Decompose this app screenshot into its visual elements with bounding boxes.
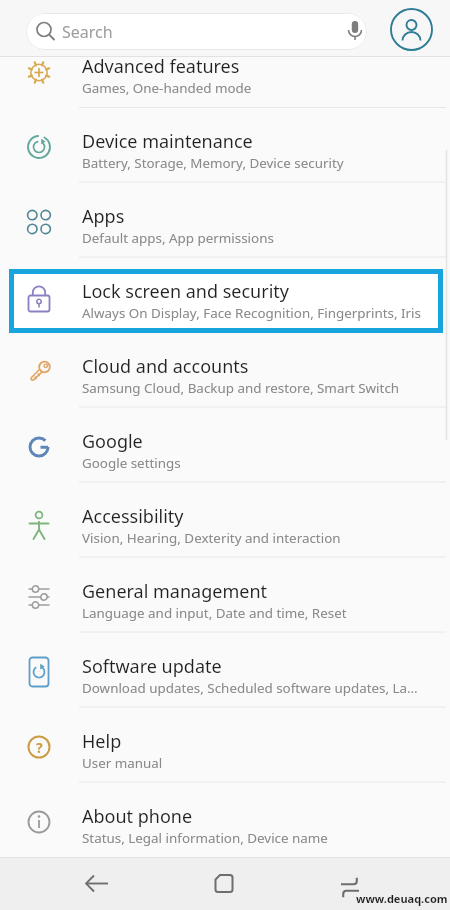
- button[interactable]: Search: [26, 13, 367, 50]
- staticText: Battery, Storage, Memory, Device securit…: [82, 154, 344, 172]
- button[interactable]: [320, 857, 380, 910]
- button[interactable]: Lock screen and security: [0, 258, 450, 333]
- button[interactable]: General management: [0, 558, 450, 633]
- button[interactable]: [194, 857, 254, 910]
- staticText: Software update: [82, 654, 222, 679]
- staticText: Cloud and accounts: [82, 354, 249, 379]
- staticText: Search: [62, 21, 113, 43]
- staticText: Download updates, Scheduled software upd…: [82, 679, 418, 697]
- staticText: Advanced features: [82, 54, 240, 79]
- button[interactable]: Device maintenance: [0, 108, 450, 183]
- staticText: Samsung Cloud, Backup and restore, Smart…: [82, 379, 400, 397]
- staticText: Always On Display, Face Recognition, Fin…: [82, 304, 421, 322]
- staticText: Device maintenance: [82, 129, 253, 154]
- button[interactable]: [389, 7, 434, 52]
- staticText: Games, One-handed mode: [82, 79, 252, 97]
- staticText: Google: [82, 429, 143, 454]
- staticText: Help: [82, 729, 122, 754]
- staticText: Lock screen and security: [82, 279, 289, 304]
- staticText: About phone: [82, 804, 193, 829]
- staticText: ?: [36, 738, 43, 757]
- staticText: www.deuaq.com: [356, 891, 448, 906]
- button[interactable]: Software update: [0, 633, 450, 708]
- button[interactable]: Accessibility: [0, 483, 450, 558]
- button[interactable]: Cloud and accounts: [0, 333, 450, 408]
- button[interactable]: About phone: [0, 783, 450, 858]
- staticText: General management: [82, 579, 268, 604]
- staticText: Language and input, Date and time, Reset: [82, 604, 347, 622]
- staticText: Accessibility: [82, 504, 184, 529]
- staticText: Vision, Hearing, Dexterity and interacti…: [82, 529, 341, 547]
- staticText: Apps: [82, 204, 125, 229]
- button[interactable]: Google: [0, 408, 450, 483]
- staticText: Default apps, App permissions: [82, 229, 274, 247]
- button[interactable]: Apps: [0, 183, 450, 258]
- button[interactable]: [67, 857, 127, 910]
- button[interactable]: Advanced features: [0, 57, 450, 108]
- button[interactable]: Help: [0, 708, 450, 783]
- staticText: Status, Legal information, Device name: [82, 829, 328, 847]
- staticText: Google settings: [82, 454, 181, 472]
- staticText: User manual: [82, 754, 163, 772]
